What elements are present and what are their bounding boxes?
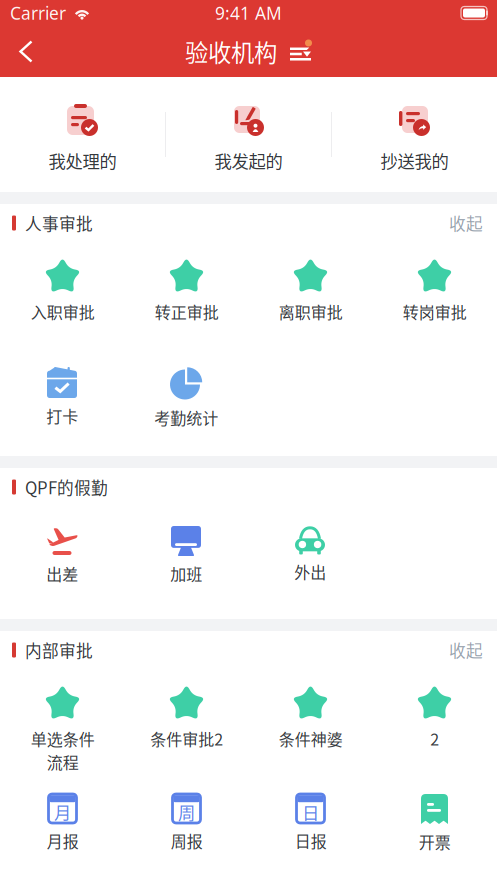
button[interactable]: 收起 — [425, 628, 483, 672]
staticText: 月报 — [46, 829, 78, 852]
staticText: 验收机构 — [185, 35, 277, 68]
button[interactable]: 收起 — [425, 201, 483, 245]
staticText: 条件神婆 — [278, 727, 342, 750]
staticText: 条件审批2 — [150, 727, 223, 750]
button[interactable]: 转正审批 — [124, 242, 248, 349]
button[interactable]: 加班 — [124, 509, 248, 616]
staticText: 转岗审批 — [402, 300, 466, 323]
button[interactable]: 考勤统计 — [124, 349, 248, 456]
staticText: 外出 — [294, 560, 326, 583]
staticText: 单选条件流程 — [30, 727, 94, 773]
button[interactable]: 日 — [248, 776, 372, 883]
button[interactable]: 外出 — [248, 509, 372, 616]
button[interactable]: 打卡 — [0, 349, 124, 456]
staticText: 月 — [54, 799, 71, 825]
button[interactable]: 周 — [124, 776, 248, 883]
staticText: 日 — [302, 799, 319, 825]
staticText: 周 — [178, 799, 195, 825]
staticText: 收起 — [449, 638, 483, 662]
staticText: 周报 — [170, 829, 202, 852]
staticText: Carrier — [10, 1, 66, 24]
staticText: 2 — [430, 727, 439, 750]
button[interactable]: Back — [0, 28, 52, 74]
button[interactable]: 我处理的 — [0, 77, 165, 192]
staticText: 转正审批 — [154, 300, 218, 323]
staticText: 我发起的 — [214, 148, 282, 173]
staticText: QPF的假勤 — [25, 475, 108, 499]
button[interactable]: 转岗审批 — [372, 242, 496, 349]
staticText: 考勤统计 — [154, 406, 218, 429]
staticText: 我处理的 — [48, 148, 116, 173]
staticText: 出差 — [46, 562, 78, 585]
staticText: 9:41 AM — [215, 1, 282, 24]
staticText: 开票 — [418, 830, 450, 853]
button[interactable]: 入职审批 — [0, 242, 124, 349]
button[interactable]: 月 — [0, 776, 124, 883]
button[interactable]: 开票 — [372, 776, 496, 883]
staticText: 离职审批 — [278, 300, 342, 323]
button[interactable]: 抄送我的 — [332, 77, 497, 192]
staticText: 加班 — [170, 562, 202, 585]
button[interactable]: 条件审批2 — [124, 669, 248, 776]
button[interactable]: 单选条件流程 — [0, 669, 124, 776]
staticText: 打卡 — [46, 404, 78, 427]
staticText: 人事审批 — [25, 211, 93, 235]
staticText: 日报 — [294, 829, 326, 852]
button[interactable]: 出差 — [0, 509, 124, 616]
button[interactable]: 条件神婆 — [248, 669, 372, 776]
button[interactable]: 离职审批 — [248, 242, 372, 349]
button[interactable]: 我发起的 — [166, 77, 331, 192]
staticText: 收起 — [449, 211, 483, 235]
staticText: 抄送我的 — [380, 148, 448, 173]
staticText: 内部审批 — [25, 638, 93, 662]
button[interactable]: 2 — [372, 669, 496, 776]
button[interactable]: Filter — [287, 39, 312, 63]
staticText: 入职审批 — [30, 300, 94, 323]
